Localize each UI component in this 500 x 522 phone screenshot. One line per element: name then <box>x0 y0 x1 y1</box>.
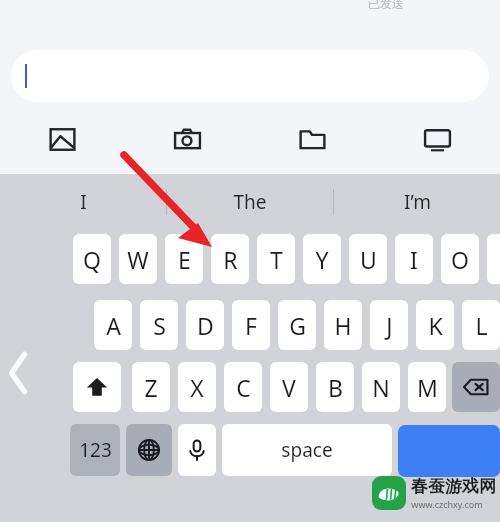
button[interactable]: D <box>186 300 224 350</box>
button[interactable]: U <box>349 234 387 284</box>
button[interactable]: I <box>395 234 433 284</box>
button[interactable]: J <box>370 300 408 350</box>
button[interactable]: Files <box>250 114 375 164</box>
staticText: F <box>245 310 257 341</box>
button[interactable]: Voice input <box>178 424 216 476</box>
button[interactable]: W <box>119 234 157 284</box>
staticText: I <box>410 244 418 275</box>
button[interactable]: T <box>257 234 295 284</box>
button[interactable]: E <box>165 234 203 284</box>
button[interactable]: Camera <box>125 114 250 164</box>
button[interactable]: S <box>140 300 178 350</box>
staticText: S <box>153 310 166 341</box>
staticText: Q <box>83 244 101 275</box>
button[interactable]: M <box>408 362 446 412</box>
button[interactable]: X <box>178 362 216 412</box>
button[interactable]: H <box>324 300 362 350</box>
button[interactable]: L <box>462 300 500 350</box>
button[interactable]: K <box>416 300 454 350</box>
staticText: 春蚕游戏网 <box>411 476 496 497</box>
button[interactable]: Z <box>132 362 170 412</box>
staticText: W <box>127 244 149 275</box>
staticText: The <box>233 189 267 215</box>
staticText: G <box>289 310 306 341</box>
button[interactable]: Y <box>303 234 341 284</box>
staticText: C <box>236 372 251 403</box>
button[interactable]: R <box>211 234 249 284</box>
staticText: H <box>334 310 352 341</box>
button[interactable]: O <box>441 234 479 284</box>
button[interactable]: Numbers <box>70 424 120 476</box>
staticText: space <box>281 437 333 463</box>
staticText: M <box>417 372 438 403</box>
button[interactable]: Shift <box>73 362 121 412</box>
button[interactable]: N <box>362 362 400 412</box>
staticText: 123 <box>79 437 112 463</box>
staticText: A <box>106 310 121 341</box>
button[interactable]: Change language <box>126 424 172 476</box>
button[interactable]: G <box>278 300 316 350</box>
button[interactable]: Send <box>398 425 500 477</box>
staticText: I’m <box>404 189 431 215</box>
button[interactable]: I’m <box>334 174 500 230</box>
button[interactable]: Space <box>222 424 392 476</box>
staticText: www.czchxy.com <box>411 498 483 510</box>
button[interactable]: F <box>232 300 270 350</box>
button[interactable]: Back <box>8 352 28 394</box>
staticText: O <box>451 244 469 275</box>
staticText: V <box>282 372 296 403</box>
staticText: 已发送 <box>368 0 404 11</box>
button[interactable]: A <box>94 300 132 350</box>
staticText: R <box>223 244 238 275</box>
button[interactable]: B <box>316 362 354 412</box>
staticText: E <box>178 244 191 275</box>
staticText: L <box>475 310 488 341</box>
button[interactable]: P <box>487 234 500 284</box>
staticText: Z <box>144 372 158 403</box>
staticText: N <box>372 372 390 403</box>
button[interactable]: V <box>270 362 308 412</box>
staticText: J <box>386 310 393 341</box>
staticText: K <box>428 310 443 341</box>
button[interactable] <box>11 50 489 102</box>
staticText: X <box>190 372 204 403</box>
staticText: T <box>270 244 283 275</box>
staticText: I <box>80 189 87 215</box>
staticText: Y <box>315 244 329 275</box>
button[interactable]: Backspace <box>452 362 500 412</box>
staticText: B <box>328 372 343 403</box>
button[interactable]: Q <box>73 234 111 284</box>
button[interactable]: Screen <box>375 114 500 164</box>
staticText: D <box>197 310 214 341</box>
button[interactable]: I <box>0 174 166 230</box>
button[interactable]: Gallery <box>0 114 125 164</box>
button[interactable]: C <box>224 362 262 412</box>
button[interactable]: The <box>167 174 333 230</box>
staticText: U <box>360 244 377 275</box>
